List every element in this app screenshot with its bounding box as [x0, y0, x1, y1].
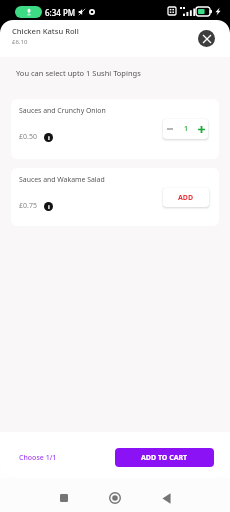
button[interactable]: Recent apps — [52, 486, 76, 510]
button[interactable]: More info — [44, 133, 53, 142]
staticText: £0.50 — [19, 132, 37, 142]
button[interactable]: Close — [198, 30, 215, 47]
staticText: i — [48, 203, 50, 211]
staticText: i — [48, 134, 50, 142]
staticText: Chicken Katsu Roll — [12, 26, 79, 36]
button[interactable]: Choose 1/1 — [19, 453, 57, 463]
staticText: 6:34 PM — [45, 7, 76, 18]
button[interactable]: Sauces and Crunchy Onion — [11, 99, 219, 159]
button[interactable]: Back — [154, 486, 178, 510]
staticText: ADD — [178, 193, 194, 203]
staticText: 1 — [180, 124, 192, 134]
staticText: Sauces and Wakame Salad — [19, 175, 105, 184]
button[interactable]: ADD TO CART — [115, 448, 214, 467]
staticText: ADD TO CART — [141, 453, 188, 463]
button[interactable]: Decrease quantity — [163, 119, 177, 139]
button[interactable]: More info — [44, 202, 53, 211]
staticText: You can select upto 1 Sushi Topings — [16, 68, 141, 78]
button[interactable]: Increase quantity — [194, 119, 208, 139]
button[interactable]: ADD — [163, 188, 209, 207]
staticText: £0.75 — [19, 201, 37, 211]
button[interactable]: Home — [103, 486, 127, 510]
staticText: £6.10 — [12, 38, 28, 46]
staticText: Sauces and Crunchy Onion — [19, 106, 106, 115]
button[interactable]: Sauces and Wakame Salad — [11, 168, 219, 226]
